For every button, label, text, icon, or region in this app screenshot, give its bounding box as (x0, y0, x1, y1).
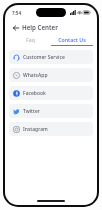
button[interactable]: Twitter (9, 104, 93, 118)
button[interactable]: WhatsApp (9, 68, 93, 82)
staticText: WhatsApp (23, 72, 48, 79)
staticText: Help Center (22, 23, 58, 31)
staticText: Customer Service (23, 54, 65, 61)
button[interactable]: Facebook (9, 86, 93, 100)
button[interactable]: Customer Service (9, 50, 93, 64)
staticText: Contact Us (58, 36, 86, 43)
staticText: 7:54 (12, 10, 21, 16)
staticText: Faq (26, 36, 35, 43)
button[interactable]: Back (10, 22, 21, 33)
staticText: Twitter (23, 108, 40, 115)
button[interactable]: Contact Us (51, 34, 93, 45)
staticText: Instagram (23, 126, 48, 133)
button[interactable]: Faq (9, 34, 51, 45)
button[interactable]: Instagram (9, 122, 93, 136)
staticText: Facebook (23, 90, 46, 97)
